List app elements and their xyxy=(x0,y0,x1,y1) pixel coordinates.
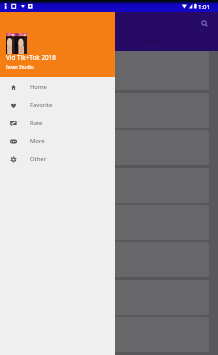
staticText: Favorite xyxy=(30,101,53,109)
button[interactable]: Favorite xyxy=(0,96,115,114)
button[interactable]: Home xyxy=(0,78,115,96)
button[interactable]: Other xyxy=(0,150,115,168)
staticText: More xyxy=(30,137,45,145)
button[interactable]: More xyxy=(0,132,115,150)
button[interactable] xyxy=(8,280,209,315)
button[interactable]: Rate xyxy=(0,114,115,132)
button[interactable] xyxy=(8,93,209,128)
button[interactable]: CATEGORIES xyxy=(142,39,164,44)
button[interactable] xyxy=(8,168,209,203)
staticText: 1:01 xyxy=(198,3,210,11)
button[interactable] xyxy=(8,242,209,277)
staticText: Home xyxy=(30,83,47,91)
button[interactable] xyxy=(8,317,209,352)
button[interactable] xyxy=(8,55,209,90)
button[interactable] xyxy=(8,48,209,89)
button[interactable] xyxy=(8,205,209,240)
button[interactable]: Search xyxy=(195,14,213,32)
staticText: Iwan Studio xyxy=(6,64,34,71)
staticText: Vid Tik+Tok 2018 xyxy=(6,53,57,62)
button[interactable] xyxy=(8,130,209,165)
staticText: Other xyxy=(30,155,47,163)
staticText: Rate xyxy=(30,119,43,127)
